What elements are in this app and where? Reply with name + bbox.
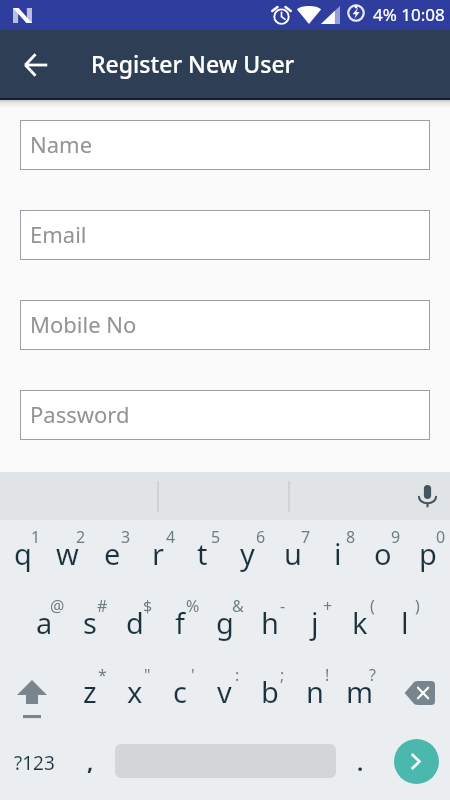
button[interactable]: 1 <box>0 520 45 589</box>
button[interactable]: 9 <box>360 520 405 589</box>
button[interactable]: . <box>340 726 385 800</box>
staticText: s <box>83 603 97 642</box>
button[interactable]: Email <box>20 210 430 260</box>
button[interactable]: 4 <box>135 520 180 589</box>
staticText: c <box>173 672 187 711</box>
button[interactable]: Name <box>20 120 430 170</box>
staticText: m <box>346 672 374 711</box>
staticText: a <box>36 603 53 642</box>
staticText: ' <box>191 664 195 686</box>
staticText: 4% 10:08 <box>373 3 445 26</box>
staticText: * <box>98 664 107 686</box>
button[interactable]: ! <box>292 658 337 726</box>
button[interactable]: , <box>69 726 114 800</box>
button[interactable]: ( <box>337 589 382 658</box>
staticText: u <box>284 534 302 573</box>
button[interactable]: ' <box>157 658 202 726</box>
button[interactable]: 6 <box>225 520 270 589</box>
button[interactable]: Back <box>12 41 60 89</box>
staticText: ?123 <box>14 750 55 776</box>
staticText: & <box>232 595 244 617</box>
staticText: 0 <box>436 526 446 548</box>
button[interactable]: Voice input <box>410 479 444 513</box>
staticText: w <box>56 534 79 573</box>
button[interactable]: 7 <box>270 520 315 589</box>
staticText: v <box>217 672 232 711</box>
staticText: d <box>126 603 144 642</box>
button[interactable]: % <box>157 589 202 658</box>
button[interactable]: : <box>202 658 247 726</box>
staticText: j <box>311 603 319 642</box>
staticText: ! <box>325 664 330 686</box>
staticText: Mobile No <box>30 309 137 339</box>
staticText: ( <box>370 595 375 617</box>
staticText: h <box>261 603 279 642</box>
staticText: " <box>144 664 151 686</box>
button[interactable]: - <box>247 589 292 658</box>
button[interactable]: Next <box>394 739 439 784</box>
button[interactable]: 2 <box>45 520 90 589</box>
staticText: t <box>197 534 208 573</box>
button[interactable]: 3 <box>90 520 135 589</box>
button[interactable]: + <box>292 589 337 658</box>
staticText: $ <box>143 595 153 617</box>
staticText: . <box>357 747 364 777</box>
staticText: 1 <box>31 526 41 548</box>
staticText: n <box>306 672 324 711</box>
staticText: : <box>235 664 240 686</box>
staticText: e <box>104 534 121 573</box>
staticText: ? <box>369 664 376 686</box>
button[interactable]: & <box>202 589 247 658</box>
button[interactable]: Password <box>20 390 430 440</box>
staticText: k <box>352 603 368 642</box>
staticText: Name <box>30 129 93 159</box>
staticText: % <box>186 595 200 617</box>
button[interactable]: Delete <box>382 658 450 726</box>
staticText: z <box>83 672 97 711</box>
staticText: q <box>14 534 32 573</box>
staticText: 4 <box>166 526 176 548</box>
button[interactable]: * <box>67 658 112 726</box>
button[interactable]: " <box>112 658 157 726</box>
staticText: r <box>152 534 164 573</box>
staticText: b <box>261 672 279 711</box>
button[interactable]: # <box>67 589 112 658</box>
staticText: Register New User <box>91 48 295 79</box>
button[interactable]: 5 <box>180 520 225 589</box>
staticText: l <box>401 603 409 642</box>
staticText: @ <box>50 595 65 617</box>
button[interactable]: $ <box>112 589 157 658</box>
staticText: 9 <box>391 526 401 548</box>
button[interactable]: ; <box>247 658 292 726</box>
staticText: # <box>97 595 108 617</box>
button[interactable]: Mobile No <box>20 300 430 350</box>
staticText: 5 <box>211 526 221 548</box>
staticText: , <box>87 746 94 776</box>
staticText: g <box>216 603 234 642</box>
staticText: ; <box>280 664 285 686</box>
button[interactable]: 0 <box>405 520 450 589</box>
staticText: 8 <box>346 526 356 548</box>
button[interactable]: ) <box>382 589 427 658</box>
button[interactable]: 8 <box>315 520 360 589</box>
staticText: Password <box>30 399 130 429</box>
staticText: 7 <box>301 526 311 548</box>
staticText: p <box>419 534 437 573</box>
staticText: 3 <box>121 526 131 548</box>
button[interactable]: @ <box>22 589 67 658</box>
staticText: o <box>374 534 392 573</box>
button[interactable]: ? <box>337 658 382 726</box>
staticText: 6 <box>256 526 266 548</box>
staticText: - <box>280 595 286 617</box>
staticText: f <box>175 603 185 642</box>
staticText: x <box>127 672 143 711</box>
staticText: + <box>323 595 333 617</box>
staticText: ) <box>415 595 420 617</box>
staticText: i <box>334 534 342 573</box>
button[interactable]: Shift <box>0 658 67 726</box>
button[interactable]: ?123 <box>2 726 66 800</box>
staticText: Email <box>30 219 87 249</box>
staticText: y <box>240 534 255 573</box>
staticText: 2 <box>76 526 86 548</box>
